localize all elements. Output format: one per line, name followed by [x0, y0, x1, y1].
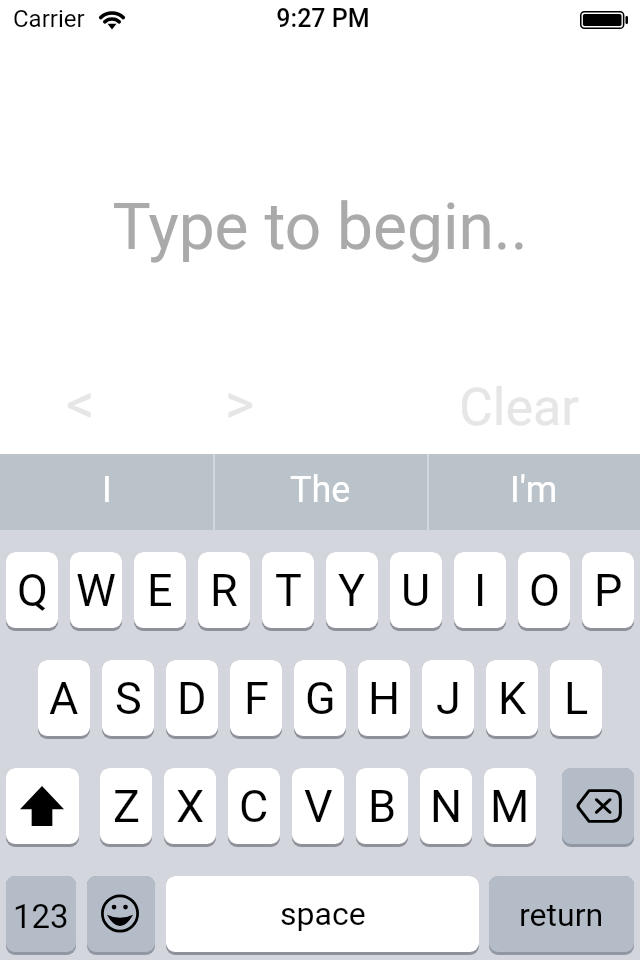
button[interactable]: P — [582, 552, 634, 631]
button[interactable]: B — [356, 768, 408, 847]
staticText: J — [436, 672, 461, 725]
staticText: I — [474, 564, 487, 617]
staticText: P — [594, 564, 623, 617]
button[interactable]: return — [489, 876, 634, 955]
staticText: < — [66, 371, 95, 437]
button[interactable]: S — [102, 660, 154, 739]
staticText: X — [176, 780, 205, 833]
staticText: N — [430, 780, 463, 833]
button[interactable]: E — [134, 552, 186, 631]
button[interactable]: 123 — [6, 876, 76, 955]
staticText: D — [177, 672, 207, 725]
staticText: U — [401, 564, 431, 617]
staticText: > — [225, 371, 255, 437]
staticText: E — [147, 564, 173, 617]
staticText: T — [275, 564, 302, 617]
button[interactable]: Z — [100, 768, 152, 847]
button[interactable]: J — [422, 660, 474, 739]
button[interactable]: I'm — [427, 454, 640, 530]
button[interactable]: H — [358, 660, 410, 739]
button[interactable]: N — [420, 768, 472, 847]
staticText: R — [210, 564, 238, 617]
button[interactable]: Shift — [6, 768, 79, 847]
staticText: B — [368, 780, 397, 833]
staticText: M — [490, 780, 530, 833]
staticText: Type to begin.. — [0, 190, 640, 265]
staticText: Clear — [459, 377, 579, 438]
button[interactable]: G — [294, 660, 346, 739]
staticText: K — [498, 672, 527, 725]
staticText: L — [564, 672, 589, 725]
button[interactable]: U — [390, 552, 442, 631]
button[interactable]: V — [292, 768, 344, 847]
button[interactable]: R — [198, 552, 250, 631]
staticText: V — [304, 780, 333, 833]
button[interactable]: I — [454, 552, 506, 631]
button[interactable]: Clear — [419, 369, 619, 445]
button[interactable]: L — [550, 660, 602, 739]
staticText: I — [102, 469, 112, 511]
button[interactable]: W — [70, 552, 122, 631]
button[interactable]: O — [518, 552, 570, 631]
staticText: return — [519, 896, 604, 934]
button[interactable]: T — [262, 552, 314, 631]
staticText: C — [239, 780, 269, 833]
button[interactable]: > — [160, 366, 320, 442]
staticText: S — [115, 672, 142, 725]
button[interactable]: C — [228, 768, 280, 847]
button[interactable]: The — [213, 454, 427, 530]
button[interactable]: Emoji keyboard — [87, 876, 155, 955]
button[interactable]: X — [164, 768, 216, 847]
button[interactable]: M — [484, 768, 536, 847]
other: Battery full — [580, 11, 628, 29]
button[interactable]: A — [38, 660, 90, 739]
staticText: Y — [338, 564, 366, 617]
staticText: Q — [17, 564, 48, 617]
staticText: Z — [113, 780, 140, 833]
button[interactable]: Y — [326, 552, 378, 631]
button[interactable]: K — [486, 660, 538, 739]
staticText: W — [76, 564, 116, 617]
staticText: O — [529, 564, 560, 617]
staticText: G — [305, 672, 336, 725]
staticText: A — [49, 672, 79, 725]
staticText: Carrier — [13, 5, 85, 33]
button[interactable]: F — [230, 660, 282, 739]
other: Wi-Fi signal — [100, 10, 124, 29]
staticText: I'm — [510, 469, 558, 511]
staticText: The — [290, 469, 351, 511]
button[interactable]: space — [166, 876, 479, 955]
staticText: H — [368, 672, 401, 725]
staticText: 123 — [13, 897, 69, 936]
staticText: 9:27 PM — [3, 4, 640, 33]
button[interactable]: D — [166, 660, 218, 739]
button[interactable]: Backspace — [562, 768, 634, 847]
button[interactable]: < — [0, 366, 160, 442]
button[interactable]: I — [0, 454, 213, 530]
staticText: F — [244, 672, 269, 725]
button[interactable]: Q — [6, 552, 58, 631]
staticText: space — [280, 895, 366, 933]
